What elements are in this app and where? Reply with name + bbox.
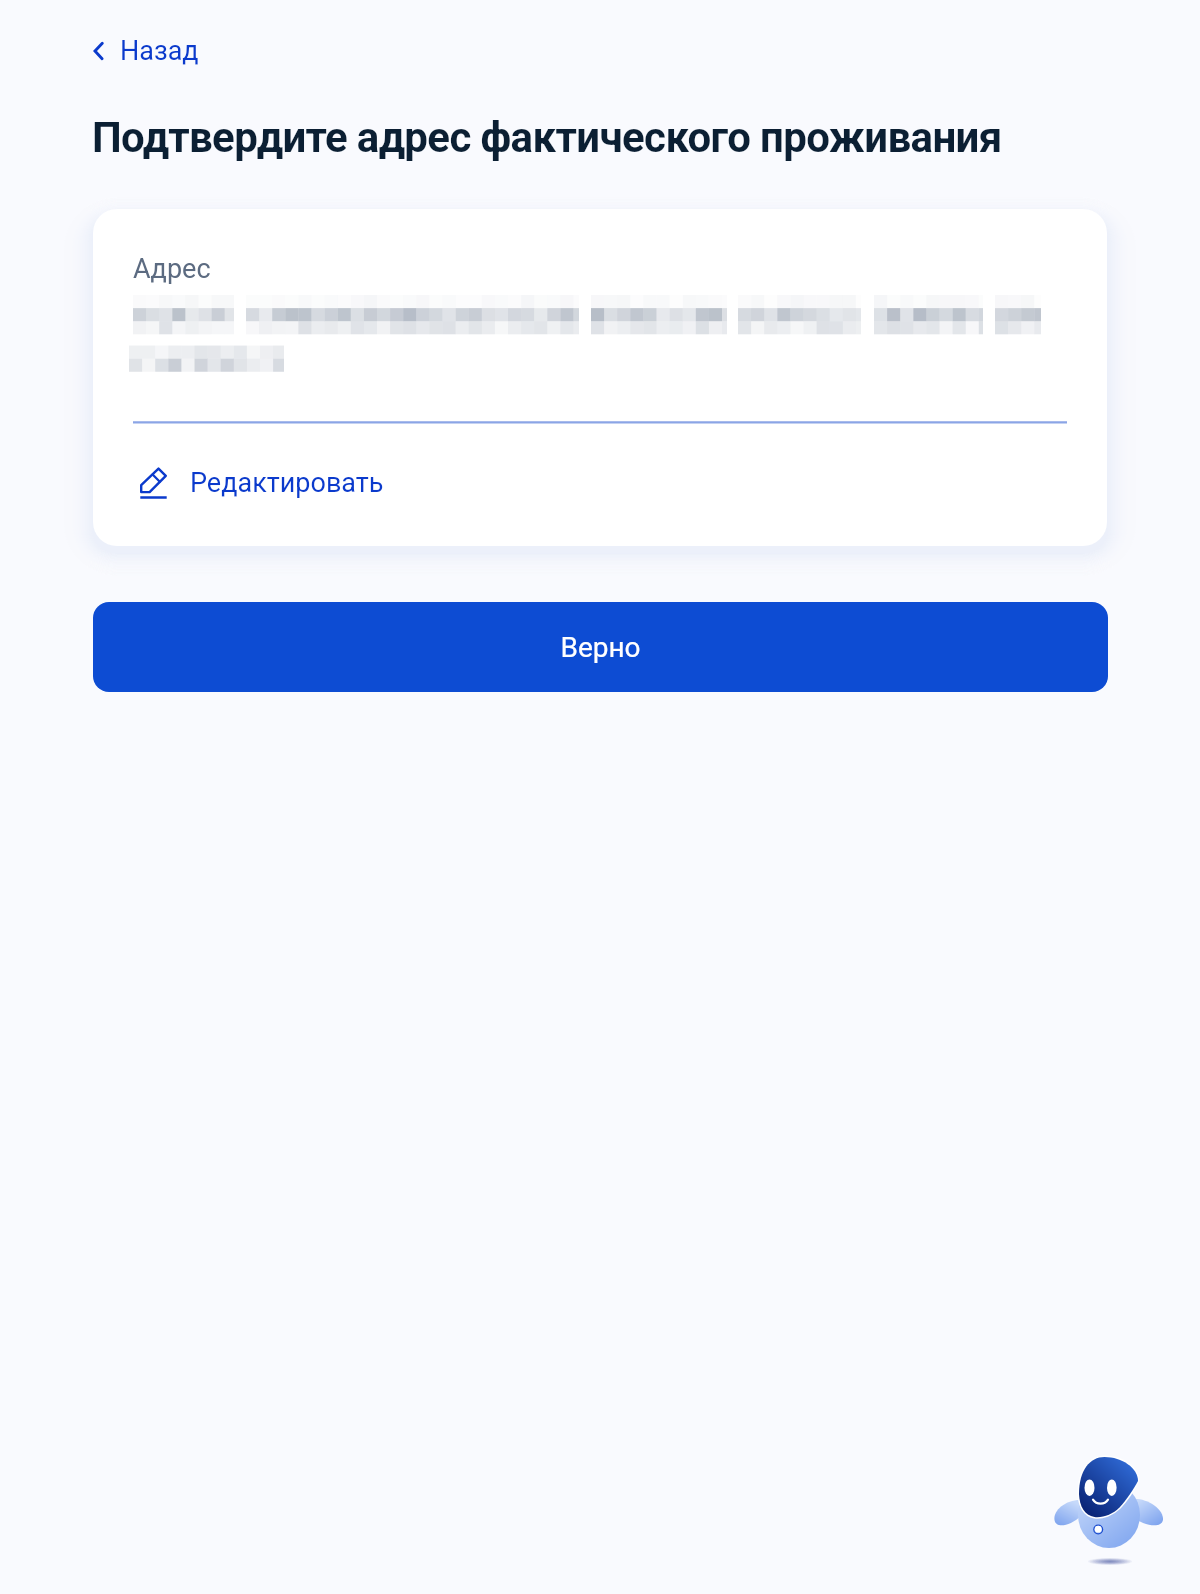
button[interactable]: Редактировать bbox=[133, 461, 390, 504]
staticText: Адрес bbox=[133, 253, 211, 285]
staticText: Подтвердите адрес фактического проживани… bbox=[92, 113, 1002, 162]
staticText: Назад bbox=[120, 35, 199, 67]
button[interactable]: Верно bbox=[93, 602, 1108, 692]
staticText: Верно bbox=[560, 631, 641, 664]
button[interactable]: Робот Макс — помощник bbox=[1046, 1446, 1176, 1576]
button[interactable]: Назад bbox=[85, 28, 207, 74]
staticText: Редактировать bbox=[190, 467, 384, 499]
